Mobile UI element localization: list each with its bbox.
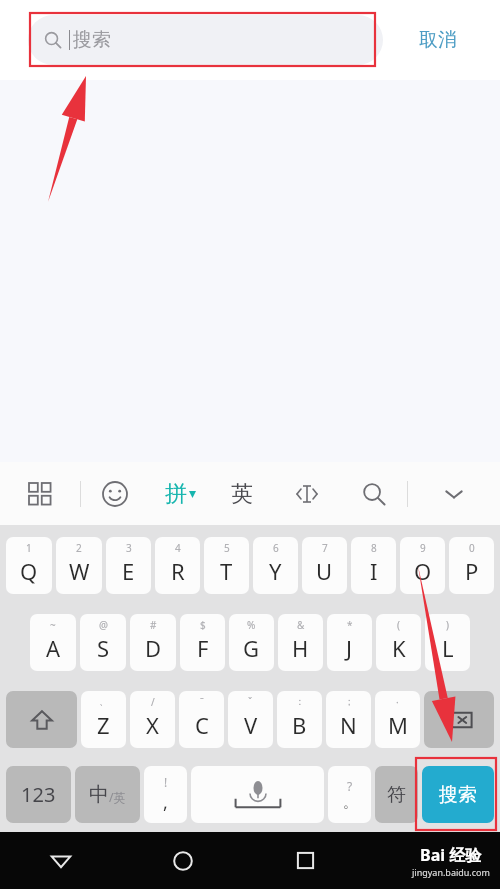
button[interactable]: ) — [425, 614, 470, 671]
staticText: 2 — [76, 541, 82, 555]
button[interactable]: ( — [376, 614, 421, 671]
button[interactable]: Shift — [6, 691, 77, 748]
staticText: S — [97, 633, 110, 663]
button[interactable]: 8 — [351, 537, 396, 594]
button[interactable]: Emoji — [81, 462, 149, 525]
button[interactable]: Backspace — [424, 691, 494, 748]
staticText: I — [370, 556, 378, 586]
button[interactable]: ! — [144, 766, 187, 823]
staticText: 英 — [231, 480, 253, 508]
staticText: # — [150, 618, 157, 632]
staticText: M — [388, 710, 408, 740]
button[interactable]: / — [130, 691, 175, 748]
staticText: W — [69, 556, 90, 586]
staticText: Z — [97, 710, 110, 740]
staticText: E — [122, 556, 135, 586]
staticText: * — [347, 618, 353, 632]
staticText: 、 — [99, 695, 109, 708]
button[interactable]: 、 — [81, 691, 126, 748]
staticText: X — [146, 710, 159, 740]
button[interactable]: @ — [80, 614, 126, 671]
button[interactable]: * — [327, 614, 372, 671]
button[interactable]: 符 — [375, 766, 418, 823]
staticText: ( — [397, 618, 400, 632]
staticText: $ — [200, 618, 206, 632]
button[interactable]: 5 — [204, 537, 249, 594]
staticText: Y — [269, 556, 282, 586]
staticText: / — [151, 695, 155, 709]
button[interactable]: ； — [326, 691, 371, 748]
button[interactable]: ~ — [30, 614, 76, 671]
staticText: P — [465, 556, 479, 586]
button[interactable]: ： — [277, 691, 322, 748]
button[interactable]: 7 — [302, 537, 347, 594]
button[interactable]: ˇ — [228, 691, 273, 748]
staticText: N — [340, 710, 357, 740]
staticText: ： — [295, 695, 305, 708]
staticText: T — [220, 556, 233, 586]
staticText: V — [244, 710, 258, 740]
staticText: 123 — [21, 781, 56, 808]
staticText: ? — [347, 778, 353, 794]
staticText: 4 — [175, 541, 181, 555]
button[interactable]: 中 — [75, 766, 140, 823]
staticText: J — [346, 633, 353, 663]
staticText: ˇ — [248, 695, 253, 709]
button[interactable]: 6 — [253, 537, 298, 594]
staticText: 1 — [26, 541, 32, 555]
staticText: 5 — [224, 541, 230, 555]
button[interactable]: # — [130, 614, 176, 671]
button[interactable]: 搜索 — [28, 15, 383, 65]
staticText: H — [292, 633, 309, 663]
staticText: 搜索 — [73, 28, 111, 52]
staticText: G — [243, 633, 260, 663]
button[interactable]: · — [375, 691, 420, 748]
button[interactable]: ? — [328, 766, 371, 823]
button[interactable]: Space — [191, 766, 324, 823]
button[interactable]: 9 — [400, 537, 445, 594]
staticText: O — [414, 556, 432, 586]
button[interactable]: 拼 — [149, 462, 211, 525]
button[interactable]: Search — [341, 462, 407, 525]
staticText: A — [46, 633, 61, 663]
button[interactable]: Home — [122, 832, 244, 889]
staticText: 8 — [371, 541, 377, 555]
staticText: 搜索 — [439, 783, 477, 807]
staticText: · — [396, 695, 399, 709]
staticText: 符 — [387, 783, 406, 807]
staticText: R — [171, 556, 185, 586]
button[interactable]: 2 — [56, 537, 102, 594]
button[interactable]: & — [278, 614, 323, 671]
staticText: U — [316, 556, 333, 586]
button[interactable]: $ — [180, 614, 225, 671]
staticText: K — [392, 633, 406, 663]
staticText: ~ — [50, 618, 56, 632]
staticText: jingyan.baidu.com — [412, 866, 490, 878]
button[interactable]: Cursor move — [273, 462, 341, 525]
button[interactable]: ˉ — [179, 691, 224, 748]
staticText: /英 — [109, 789, 126, 805]
staticText: ! — [164, 774, 168, 790]
staticText: 取消 — [419, 28, 457, 52]
button[interactable]: 搜索 — [422, 766, 494, 823]
button[interactable]: Keyboard modes — [0, 462, 80, 525]
button[interactable]: 4 — [155, 537, 200, 594]
button[interactable]: 0 — [449, 537, 494, 594]
button[interactable]: 3 — [106, 537, 151, 594]
staticText: 中 — [89, 782, 109, 807]
button[interactable]: 123 — [6, 766, 71, 823]
staticText: 拼 — [165, 480, 187, 508]
staticText: 3 — [126, 541, 132, 555]
button[interactable]: 英 — [211, 462, 273, 525]
staticText: F — [197, 633, 209, 663]
button[interactable]: Recents — [244, 832, 366, 889]
button[interactable]: 1 — [6, 537, 52, 594]
staticText: L — [442, 633, 454, 663]
button[interactable]: Back — [0, 832, 122, 889]
button[interactable]: 取消 — [400, 15, 475, 65]
staticText: 。 — [343, 794, 357, 812]
button[interactable]: Hide keyboard — [408, 462, 500, 525]
button[interactable]: % — [229, 614, 274, 671]
staticText: 7 — [322, 541, 328, 555]
staticText: C — [195, 710, 209, 740]
